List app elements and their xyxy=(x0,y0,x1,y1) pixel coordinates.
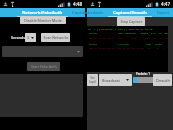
button[interactable]: Stop Capture xyxy=(117,17,145,26)
button[interactable]: Stn (opt) xyxy=(87,74,98,86)
staticText: Stn (opt) xyxy=(89,76,96,84)
staticText: Stop Capture xyxy=(120,19,143,24)
staticText: 4:47 xyxy=(161,1,171,7)
button[interactable]: Start Fake Auth xyxy=(27,62,60,71)
button[interactable]: Disable Monitor Mode xyxy=(20,16,66,24)
staticText: Broadcast xyxy=(102,78,120,83)
staticText: Start Fake Auth xyxy=(31,64,57,69)
staticText: Network/FakeAuth xyxy=(22,10,63,16)
staticText: BSSID STATION PWR Rate Lost xyxy=(88,42,169,45)
staticText: CH 1 ][ Elapsed: 1 min ][ 2015-08-11 04:… xyxy=(88,27,153,30)
staticText: Deauth xyxy=(156,78,170,83)
staticText: 00:1F:33:F5:6A:12 E8:99:C4:3A:71:BD -51 … xyxy=(88,46,169,49)
button[interactable]: Scan Networks xyxy=(41,33,70,42)
staticText: Capture/Deauth xyxy=(113,10,147,16)
button[interactable] xyxy=(133,77,155,83)
staticText: BSSID PWR Beacons #Data, #/s CH MB ENC xyxy=(88,31,169,34)
staticText: Seconds xyxy=(11,35,26,40)
staticText: Disable Monitor Mode xyxy=(24,18,62,23)
staticText: 00:1F:33:F5:6A:12 -43 172 15 0 1 54e WPA… xyxy=(88,36,169,39)
button[interactable]: Deauth xyxy=(153,74,172,86)
button[interactable]: Network/FakeAuth xyxy=(17,8,68,17)
staticText: Packets: 1 xyxy=(136,72,151,76)
staticText: Inject xyxy=(157,10,170,16)
staticText: 4:48 xyxy=(73,1,83,7)
button[interactable]: Capture/Deauth xyxy=(108,8,152,17)
button[interactable]: FakeAuth xyxy=(79,8,107,17)
staticText: FakeAuth xyxy=(83,10,104,16)
button[interactable]: Capture xyxy=(68,8,92,17)
button[interactable]: Inject xyxy=(153,8,173,17)
button[interactable]: Broadcast xyxy=(99,74,132,86)
staticText: Scan Networks xyxy=(43,35,69,40)
button[interactable]: 3 xyxy=(25,33,36,42)
staticText: Capture xyxy=(72,10,89,16)
staticText: 3 xyxy=(27,35,30,40)
button[interactable] xyxy=(2,46,83,57)
